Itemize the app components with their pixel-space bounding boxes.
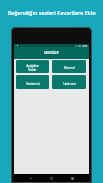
button[interactable]: Gerisini al	[16, 75, 49, 89]
button[interactable]: Home	[47, 174, 56, 183]
button[interactable]: Bizim ol	[52, 60, 86, 73]
button[interactable]: Aşağıdan Kaldır	[16, 60, 49, 73]
staticText: Gerisini al	[26, 82, 40, 86]
staticText: Aşağıdan Kaldır	[26, 64, 39, 72]
staticText: Bizim ol	[64, 66, 75, 70]
button[interactable]: Uzat sesi	[52, 75, 86, 89]
staticText: FAVORİLER	[44, 51, 59, 55]
button[interactable]: Back	[26, 174, 35, 183]
staticText: Uzat sesi	[63, 82, 76, 86]
button[interactable]: Recents	[68, 174, 77, 183]
staticText: Beğendiğin sesleri Favorilere Ekle	[7, 9, 96, 16]
